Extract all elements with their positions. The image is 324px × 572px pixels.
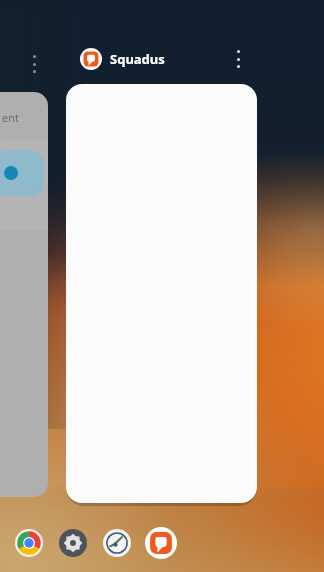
button[interactable] [66, 84, 257, 503]
button[interactable]: More options [29, 55, 39, 73]
staticText: Squadus [110, 50, 165, 68]
button[interactable]: More options [232, 50, 244, 68]
button[interactable]: Settings [58, 528, 88, 558]
button[interactable]: Chrome [14, 528, 44, 558]
staticText: ent [2, 110, 19, 125]
button[interactable]: ent [0, 92, 48, 497]
button[interactable]: Squadus [144, 526, 178, 560]
button[interactable]: Squadus [80, 47, 165, 71]
button[interactable]: Browser [102, 528, 132, 558]
